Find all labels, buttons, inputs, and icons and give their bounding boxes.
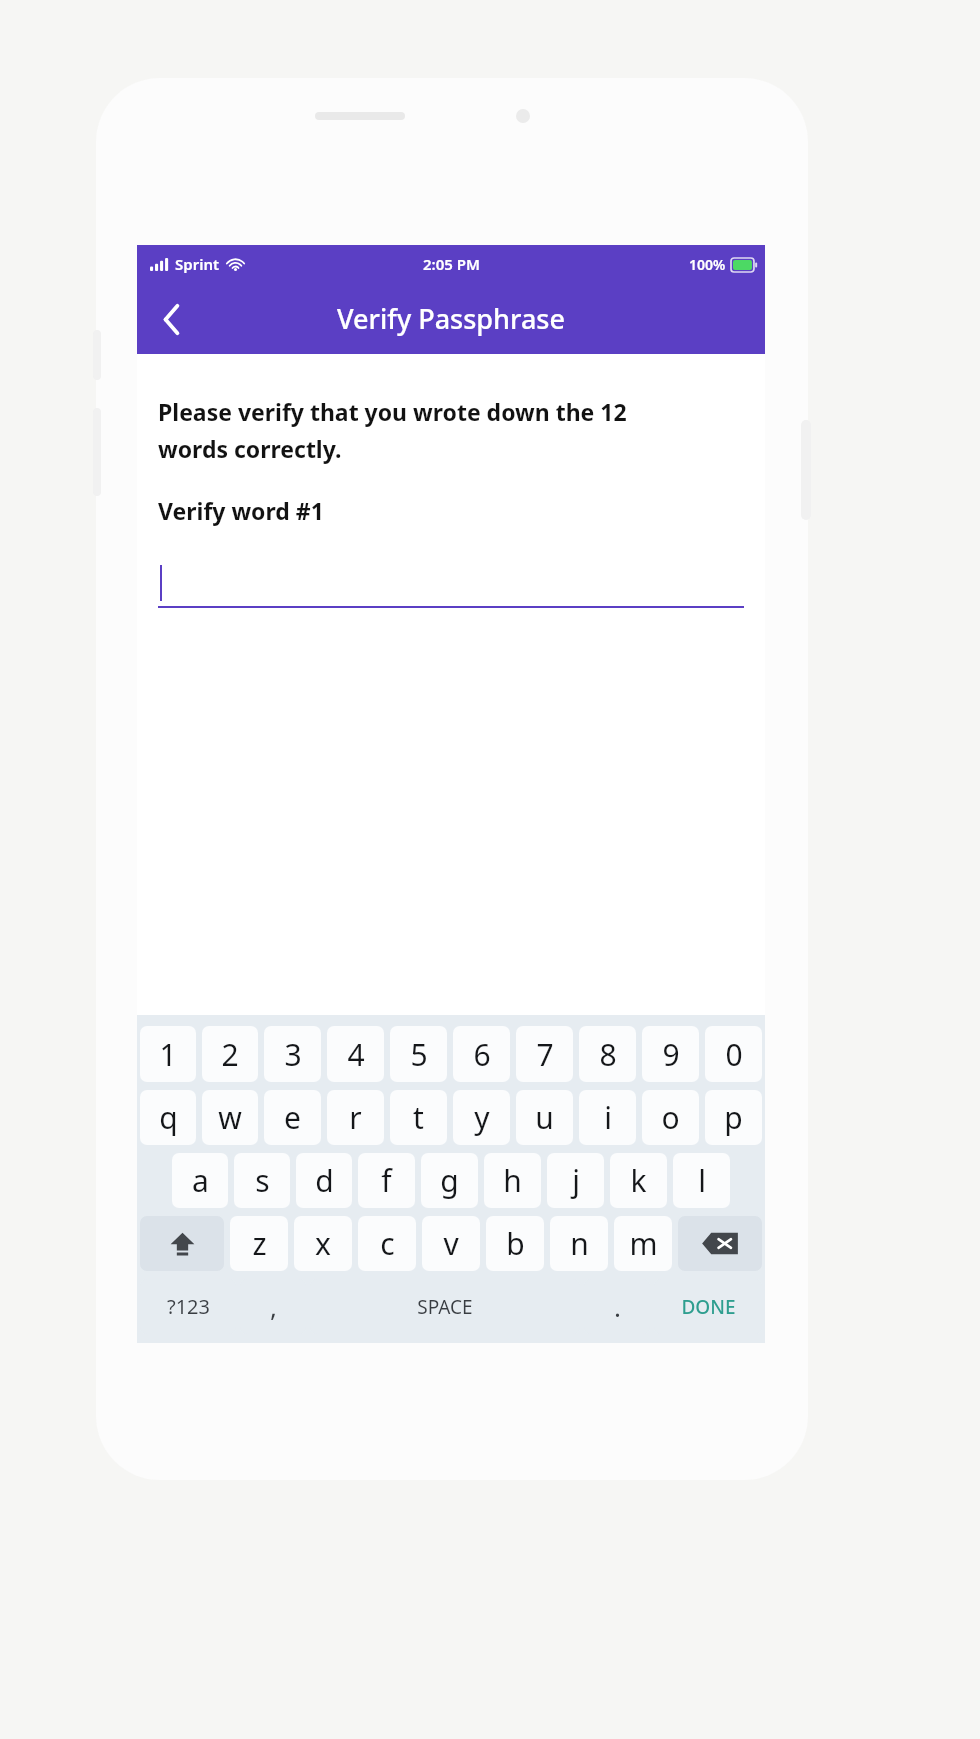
button[interactable]: p (705, 1090, 762, 1145)
button[interactable]: y (453, 1090, 510, 1145)
staticText: t (413, 1097, 424, 1138)
staticText: y (474, 1097, 490, 1138)
button[interactable]: g (421, 1153, 478, 1208)
staticText: 3 (284, 1034, 302, 1075)
button[interactable]: f (358, 1153, 415, 1208)
button[interactable]: a (172, 1153, 228, 1208)
staticText: 100% (689, 255, 726, 274)
button[interactable]: q (140, 1090, 196, 1145)
staticText: ?123 (167, 1293, 210, 1320)
staticText: 4 (347, 1034, 365, 1075)
button[interactable]: . (584, 1279, 650, 1334)
button[interactable]: 0 (705, 1026, 762, 1082)
button[interactable]: z (230, 1216, 288, 1271)
button[interactable]: i (579, 1090, 636, 1145)
button[interactable]: c (358, 1216, 416, 1271)
button[interactable]: x (294, 1216, 352, 1271)
staticText: q (159, 1097, 178, 1138)
staticText: f (381, 1160, 392, 1201)
button[interactable]: w (202, 1090, 258, 1145)
button[interactable]: b (486, 1216, 544, 1271)
button[interactable]: 1 (140, 1026, 196, 1082)
button[interactable]: 5 (390, 1026, 447, 1082)
button[interactable]: Backspace (678, 1216, 762, 1271)
staticText: m (629, 1223, 658, 1264)
button[interactable]: h (484, 1153, 541, 1208)
staticText: b (506, 1223, 525, 1264)
button[interactable]: 4 (327, 1026, 384, 1082)
button[interactable]: v (422, 1216, 480, 1271)
staticText: 2 (221, 1034, 239, 1075)
button[interactable]: o (642, 1090, 699, 1145)
staticText: 6 (473, 1034, 491, 1075)
staticText: Please verify that you wrote down the 12… (158, 396, 627, 465)
button[interactable]: m (614, 1216, 672, 1271)
staticText: Verify word #1 (158, 495, 324, 526)
button[interactable]: Word input field (158, 558, 744, 608)
staticText: h (503, 1160, 522, 1201)
button[interactable]: 9 (642, 1026, 699, 1082)
staticText: 2:05 PM (423, 254, 480, 274)
button[interactable]: ?123 (140, 1279, 236, 1334)
staticText: j (572, 1160, 580, 1201)
staticText: , (270, 1289, 277, 1324)
staticText: a (192, 1160, 209, 1201)
staticText: DONE (681, 1294, 736, 1320)
staticText: i (604, 1097, 612, 1138)
staticText: Sprint (175, 254, 220, 274)
button[interactable]: n (550, 1216, 608, 1271)
staticText: SPACE (417, 1294, 473, 1320)
staticText: o (661, 1097, 680, 1138)
button[interactable]: e (264, 1090, 321, 1145)
button[interactable]: r (327, 1090, 384, 1145)
staticText: Verify Passphrase (337, 300, 565, 337)
button[interactable]: SPACE (310, 1279, 580, 1334)
button[interactable]: DONE (654, 1279, 762, 1334)
staticText: c (380, 1223, 395, 1264)
staticText: e (284, 1097, 301, 1138)
staticText: u (535, 1097, 554, 1138)
staticText: 0 (725, 1034, 743, 1075)
staticText: k (630, 1160, 647, 1201)
button[interactable]: l (673, 1153, 730, 1208)
button[interactable]: , (240, 1279, 306, 1334)
staticText: 8 (599, 1034, 617, 1075)
button[interactable]: 8 (579, 1026, 636, 1082)
button[interactable]: t (390, 1090, 447, 1145)
button[interactable]: 3 (264, 1026, 321, 1082)
button[interactable]: s (234, 1153, 290, 1208)
staticText: 9 (662, 1034, 680, 1075)
staticText: . (614, 1289, 621, 1324)
staticText: 1 (159, 1034, 177, 1075)
staticText: 5 (410, 1034, 428, 1075)
staticText: s (255, 1160, 270, 1201)
staticText: g (440, 1160, 459, 1201)
staticText: x (315, 1223, 331, 1264)
button[interactable]: d (296, 1153, 352, 1208)
staticText: d (315, 1160, 334, 1201)
staticText: v (443, 1223, 459, 1264)
button[interactable]: u (516, 1090, 573, 1145)
staticText: n (570, 1223, 589, 1264)
staticText: w (218, 1097, 242, 1138)
staticText: 7 (536, 1034, 554, 1075)
staticText: r (349, 1097, 362, 1138)
button[interactable]: j (547, 1153, 604, 1208)
button[interactable]: 2 (202, 1026, 258, 1082)
staticText: l (698, 1160, 706, 1201)
button[interactable]: Shift (140, 1216, 224, 1271)
button[interactable]: 6 (453, 1026, 510, 1082)
staticText: p (724, 1097, 743, 1138)
button[interactable]: 7 (516, 1026, 573, 1082)
staticText: z (252, 1223, 267, 1264)
button[interactable]: k (610, 1153, 667, 1208)
button[interactable]: Back (143, 291, 199, 347)
